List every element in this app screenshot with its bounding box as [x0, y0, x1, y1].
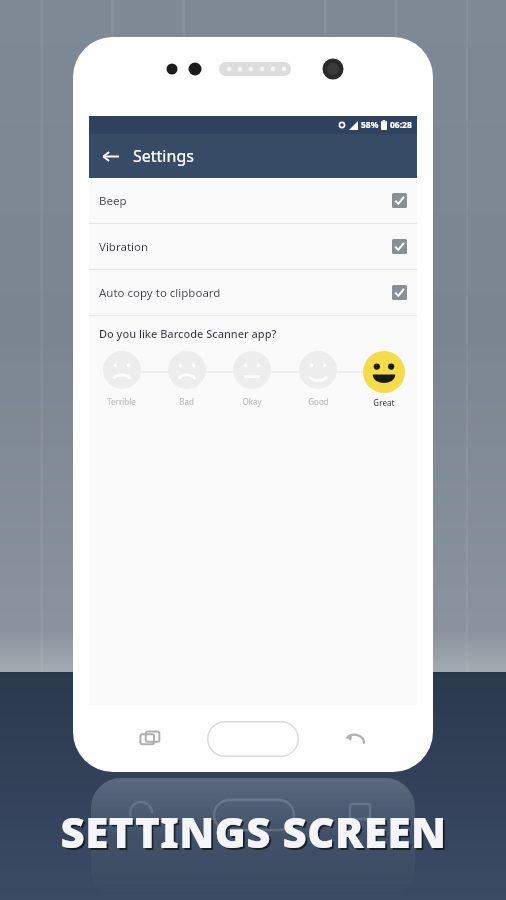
- staticText: Good: [308, 396, 329, 407]
- button[interactable]: Recent apps: [131, 719, 171, 759]
- button[interactable]: Vibration: [89, 224, 417, 269]
- button[interactable]: Bad: [154, 351, 219, 407]
- button[interactable]: Terrible: [89, 351, 154, 407]
- button[interactable]: Good: [285, 351, 351, 407]
- button[interactable]: Back: [335, 719, 375, 759]
- staticText: 06:28: [390, 119, 412, 131]
- button[interactable]: Great: [351, 351, 417, 408]
- staticText: Terrible: [107, 396, 136, 407]
- button[interactable]: Okay: [219, 351, 285, 407]
- staticText: SETTINGS SCREEN: [60, 803, 447, 860]
- staticText: 58%: [361, 119, 379, 131]
- staticText: Do you like Barcode Scanner app?: [99, 326, 277, 341]
- button[interactable]: Back: [95, 141, 125, 171]
- button[interactable]: Home: [207, 721, 299, 757]
- button[interactable]: Auto copy to clipboard: [89, 270, 417, 315]
- staticText: Okay: [242, 396, 262, 407]
- staticText: Auto copy to clipboard: [99, 285, 392, 301]
- staticText: Great: [373, 397, 395, 408]
- staticText: Beep: [99, 193, 392, 209]
- staticText: SETTINGS SCREEN: [62, 805, 449, 862]
- staticText: Vibration: [99, 239, 392, 255]
- staticText: Bad: [179, 396, 194, 407]
- staticText: Settings: [133, 145, 194, 167]
- button[interactable]: Beep: [89, 178, 417, 223]
